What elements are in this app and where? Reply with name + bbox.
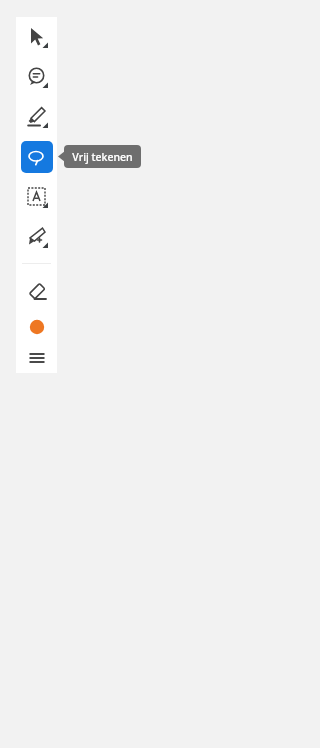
button[interactable]: Gum [16,271,57,311]
staticText: Vrij tekenen [72,150,133,164]
button[interactable]: Vrij tekenen [16,137,57,177]
button[interactable]: Selecteren [16,17,57,57]
button[interactable]: Kleur [16,311,57,343]
button[interactable]: Opmerking [16,57,57,97]
button[interactable]: Menu [16,343,57,373]
button[interactable]: Markeerstift [16,97,57,137]
button[interactable]: Tekstvak [16,177,57,217]
button[interactable]: Pen [16,217,57,257]
